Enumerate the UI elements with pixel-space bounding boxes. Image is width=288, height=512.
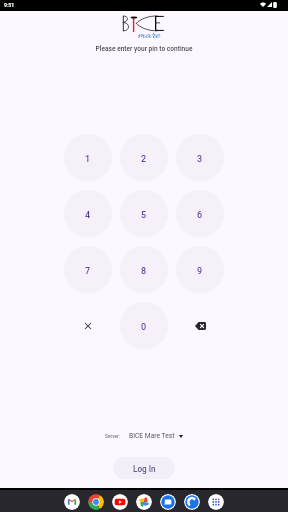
staticText: Server:: [105, 433, 120, 439]
button[interactable]: Photos: [136, 494, 152, 510]
button[interactable]: YouTube: [112, 494, 128, 510]
button[interactable]: 7: [64, 246, 112, 294]
staticText: 7: [85, 266, 91, 277]
button[interactable]: Log In: [113, 457, 175, 479]
button[interactable]: Chrome: [88, 494, 104, 510]
button[interactable]: Clear: [64, 302, 112, 350]
button[interactable]: 4: [64, 190, 112, 238]
button[interactable]: 6: [176, 190, 224, 238]
staticText: 2: [141, 154, 147, 165]
staticText: Log In: [133, 464, 156, 474]
staticText: 0: [141, 322, 147, 333]
button[interactable]: 3: [176, 134, 224, 182]
staticText: 9:51: [4, 2, 15, 8]
button[interactable]: Gmail: [64, 494, 80, 510]
staticText: 3: [197, 154, 203, 165]
button[interactable]: 0: [120, 302, 168, 350]
button[interactable]: All apps: [208, 494, 224, 510]
staticText: 1: [85, 154, 91, 165]
button[interactable]: 8: [120, 246, 168, 294]
staticText: 9: [197, 266, 203, 277]
staticText: 5: [141, 210, 147, 221]
button[interactable]: BICE Mare Test: [129, 432, 183, 440]
staticText: 4: [85, 210, 91, 221]
staticText: Please enter your pin to continue: [0, 45, 288, 53]
button[interactable]: Phone: [184, 494, 200, 510]
button[interactable]: 1: [64, 134, 112, 182]
staticText: mare: [138, 28, 160, 44]
button[interactable]: Messages: [160, 494, 176, 510]
button[interactable]: 9: [176, 246, 224, 294]
staticText: 8: [141, 266, 147, 277]
button[interactable]: 2: [120, 134, 168, 182]
button[interactable]: Backspace: [176, 302, 224, 350]
staticText: BICE Mare Test: [129, 432, 175, 440]
button[interactable]: 5: [120, 190, 168, 238]
staticText: 6: [197, 210, 203, 221]
